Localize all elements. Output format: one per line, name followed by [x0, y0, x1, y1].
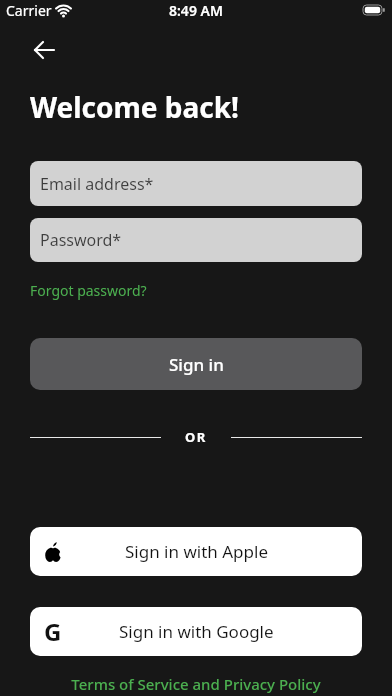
button[interactable]: Email address* [30, 161, 362, 206]
staticText: Sign in with Google [119, 620, 274, 643]
staticText: G [44, 615, 62, 648]
button[interactable]: Password* [30, 218, 362, 262]
staticText: OR [185, 428, 207, 446]
staticText: Sign in [169, 353, 224, 376]
staticText: Carrier [6, 1, 52, 20]
button[interactable]: Forgot password? [30, 281, 147, 300]
staticText: Email address* [40, 173, 154, 195]
staticText: Welcome back! [30, 88, 239, 126]
button[interactable] [30, 36, 58, 64]
button[interactable]: Sign in [30, 338, 362, 390]
staticText: Password* [40, 229, 122, 251]
button[interactable]: Sign in with Apple [30, 527, 362, 576]
staticText: 8:49 AM [169, 1, 223, 20]
button[interactable]: G [30, 607, 362, 656]
button[interactable]: Terms of Service and Privacy Policy [30, 674, 362, 694]
staticText: Sign in with Apple [125, 540, 268, 563]
